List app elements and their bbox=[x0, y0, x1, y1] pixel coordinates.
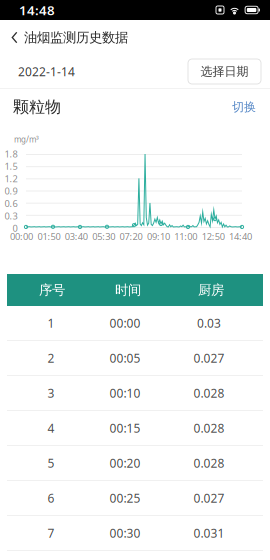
staticText: 0.028 bbox=[193, 420, 224, 436]
staticText: 1.5 bbox=[4, 160, 17, 172]
staticText: 4 bbox=[47, 420, 54, 436]
staticText: 0 bbox=[12, 222, 17, 234]
staticText: 1 bbox=[47, 315, 54, 331]
staticText: 14:40 bbox=[229, 230, 252, 243]
staticText: 01:50 bbox=[37, 230, 60, 243]
staticText: 00:00 bbox=[10, 230, 33, 243]
staticText: 14:48 bbox=[19, 1, 55, 19]
staticText: 切换 bbox=[232, 100, 256, 114]
staticText: 序号 bbox=[39, 282, 65, 298]
staticText: 00:30 bbox=[109, 525, 140, 541]
staticText: 选择日期 bbox=[200, 64, 248, 79]
staticText: 5 bbox=[47, 455, 54, 471]
staticText: 2022-1-14 bbox=[18, 63, 75, 79]
staticText: 时间 bbox=[115, 282, 141, 298]
staticText: 1.8 bbox=[4, 148, 17, 160]
staticText: 0.3 bbox=[4, 210, 17, 222]
staticText: 颗粒物 bbox=[13, 97, 61, 117]
staticText: 0.03 bbox=[197, 315, 221, 331]
staticText: 07:20 bbox=[119, 230, 142, 243]
staticText: 0.028 bbox=[193, 385, 224, 401]
staticText: 0.031 bbox=[193, 525, 224, 541]
staticText: 0.6 bbox=[4, 197, 17, 210]
button[interactable]: Back bbox=[0, 22, 24, 53]
staticText: 09:10 bbox=[147, 230, 170, 243]
button[interactable]: 选择日期 bbox=[188, 59, 261, 84]
staticText: mg/m³ bbox=[14, 134, 39, 145]
button[interactable]: 4 bbox=[7, 411, 263, 446]
staticText: 00:25 bbox=[109, 490, 140, 506]
staticText: 0.028 bbox=[193, 455, 224, 471]
staticText: 12:50 bbox=[202, 230, 225, 243]
staticText: 0.9 bbox=[4, 185, 17, 197]
button[interactable]: 2 bbox=[7, 341, 263, 376]
button[interactable]: 6 bbox=[7, 481, 263, 516]
staticText: 05:30 bbox=[92, 230, 115, 243]
staticText: 1.2 bbox=[4, 172, 17, 185]
staticText: 00:05 bbox=[109, 350, 140, 366]
staticText: 7 bbox=[47, 525, 54, 541]
staticText: 00:20 bbox=[109, 455, 140, 471]
staticText: 03:40 bbox=[65, 230, 88, 243]
staticText: 11:00 bbox=[174, 230, 197, 243]
button[interactable]: 切换 bbox=[232, 100, 256, 114]
button[interactable]: 1 bbox=[7, 306, 263, 341]
staticText: 厨房 bbox=[198, 282, 224, 298]
button[interactable]: 5 bbox=[7, 446, 263, 481]
staticText: 2 bbox=[47, 350, 54, 366]
staticText: 0.027 bbox=[193, 350, 224, 366]
staticText: 00:15 bbox=[109, 420, 140, 436]
staticText: 3 bbox=[47, 385, 54, 401]
staticText: 油烟监测历史数据 bbox=[24, 29, 128, 46]
staticText: 6 bbox=[47, 490, 54, 506]
staticText: 00:00 bbox=[109, 315, 140, 331]
staticText: 00:10 bbox=[109, 385, 140, 401]
button[interactable]: 3 bbox=[7, 376, 263, 411]
staticText: 0.027 bbox=[193, 490, 224, 506]
button[interactable]: 7 bbox=[7, 516, 263, 551]
